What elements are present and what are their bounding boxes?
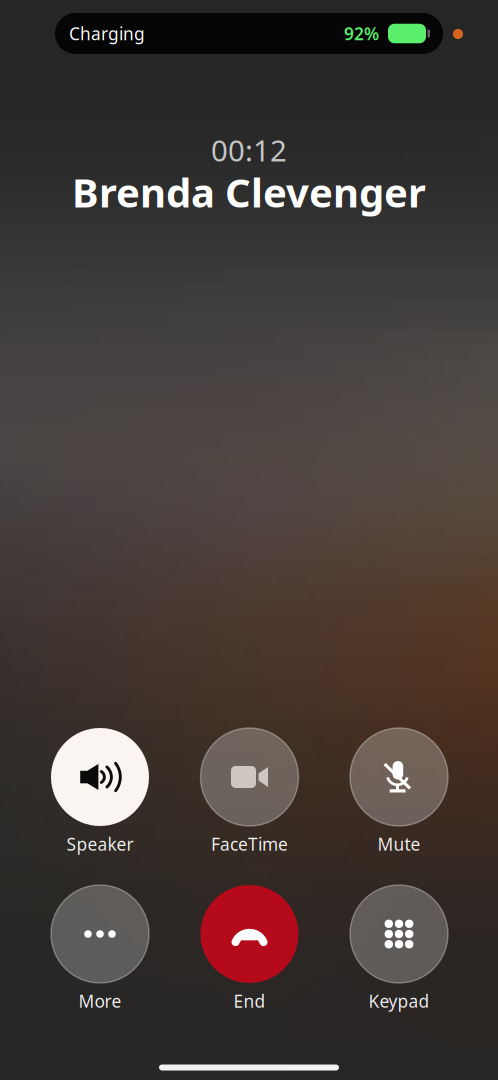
staticText: Mute (377, 832, 420, 855)
staticText: 92% (344, 22, 379, 45)
staticText: Brenda Clevenger (72, 165, 426, 218)
staticText: FaceTime (211, 832, 288, 855)
button[interactable]: Keypad (324, 885, 473, 1017)
button[interactable]: End (175, 885, 324, 1017)
button[interactable]: FaceTime (175, 728, 324, 860)
staticText: Charging (69, 22, 145, 45)
staticText: End (233, 989, 265, 1012)
button[interactable]: More (25, 885, 174, 1017)
staticText: More (78, 989, 121, 1012)
button[interactable]: Mute (324, 728, 473, 860)
staticText: Keypad (368, 989, 429, 1012)
staticText: Speaker (66, 832, 133, 855)
button[interactable]: Charging, 92 percent (55, 13, 443, 54)
staticText: 00:12 (211, 130, 287, 169)
button[interactable]: Speaker (25, 728, 174, 860)
